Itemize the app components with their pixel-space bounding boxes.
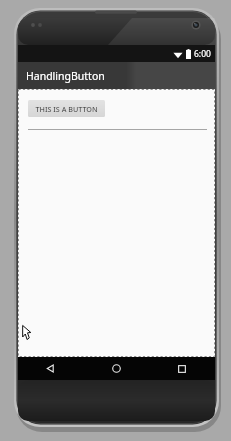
button[interactable]: Home	[83, 357, 149, 380]
staticText: 6:00	[194, 48, 211, 60]
button[interactable]: THIS IS A BUTTON	[28, 100, 105, 117]
staticText: THIS IS A BUTTON	[35, 104, 98, 114]
staticText: HandlingButton	[26, 69, 105, 83]
button[interactable]: Recent apps	[149, 357, 215, 380]
button[interactable]: Back	[18, 357, 83, 380]
